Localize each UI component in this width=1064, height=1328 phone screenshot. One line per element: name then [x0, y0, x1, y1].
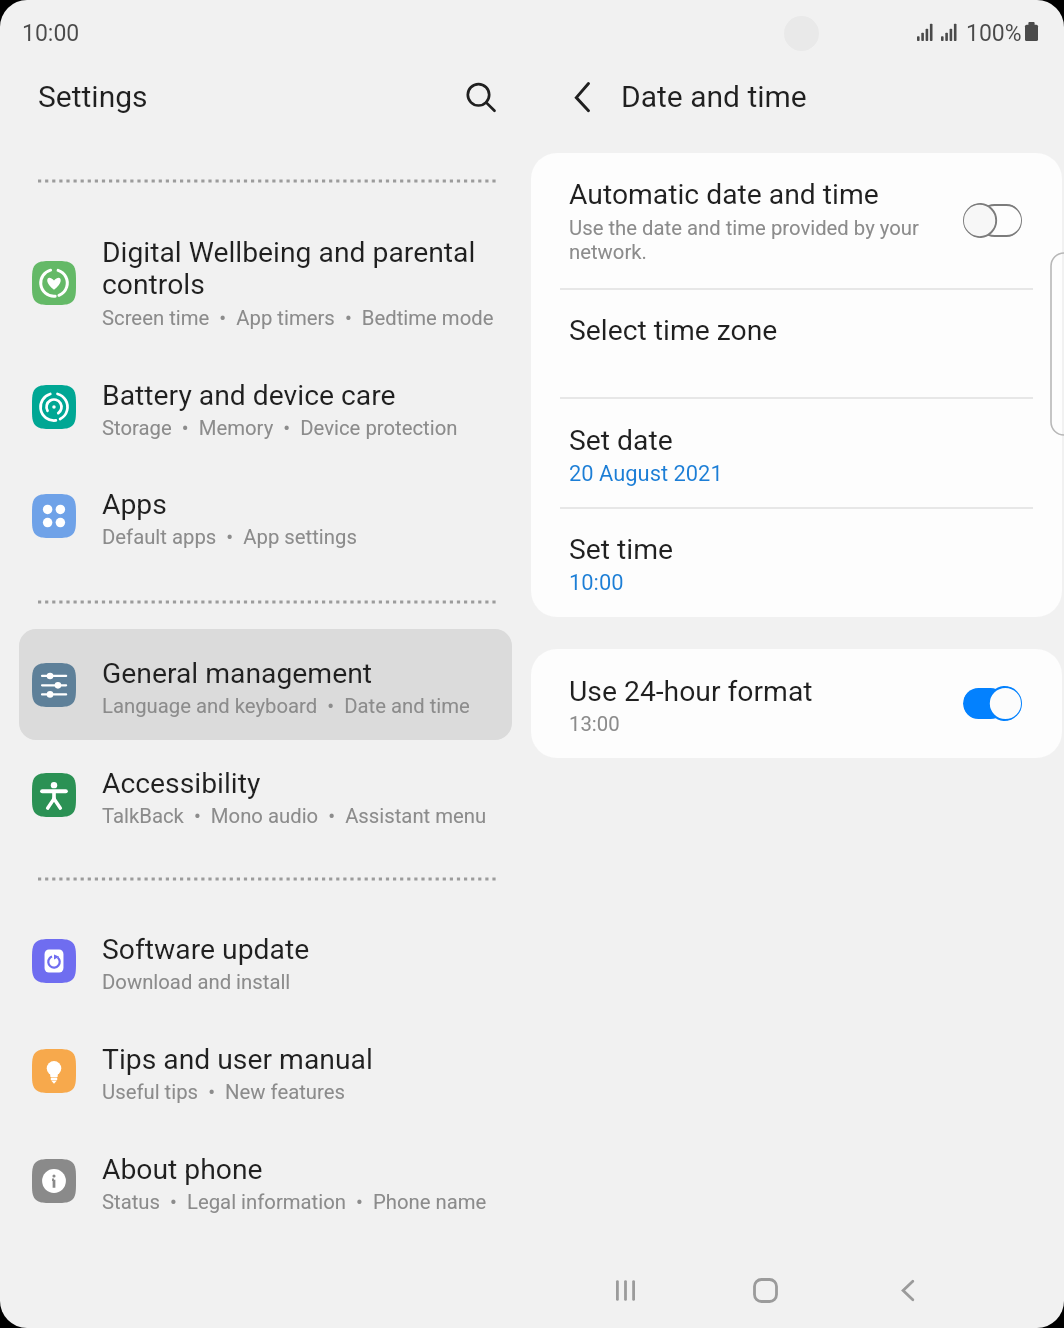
staticText: Storage • Memory • Device protection	[102, 416, 458, 440]
button[interactable]: About phone	[19, 1148, 512, 1240]
button[interactable]: Apps	[19, 483, 512, 575]
button[interactable]: General management	[19, 652, 512, 744]
staticText: Accessibility	[102, 767, 261, 800]
staticText: Tips and user manual	[102, 1043, 373, 1076]
staticText: 10:00	[22, 20, 80, 47]
staticText: Settings	[38, 79, 148, 114]
button[interactable]: Accessibility	[19, 762, 512, 854]
button[interactable]: Set time	[531, 507, 1062, 617]
button[interactable]: Battery and device care	[19, 374, 512, 466]
button[interactable]: Home	[734, 1259, 796, 1321]
button[interactable]: Recents	[594, 1259, 656, 1321]
staticText: Digital Wellbeing and parental	[102, 236, 476, 269]
button[interactable]: Select time zone	[531, 288, 1062, 398]
button[interactable]: Automatic date and time, off	[963, 203, 1022, 238]
button[interactable]: Search	[452, 68, 505, 121]
staticText: Apps	[102, 488, 167, 521]
staticText: Use 24-hour format	[569, 675, 813, 708]
staticText: Language and keyboard • Date and time	[102, 694, 470, 718]
staticText: About phone	[102, 1153, 263, 1186]
staticText: 100%	[966, 20, 1022, 47]
staticText: Default apps • App settings	[102, 525, 357, 549]
button[interactable]: Tips and user manual	[19, 1038, 512, 1130]
button[interactable]: Automatic date and time	[531, 153, 1062, 287]
button[interactable]: Use 24-hour format	[531, 649, 1062, 758]
staticText: Automatic date and time	[569, 178, 879, 211]
staticText: Screen time • App timers • Bedtime mode	[102, 306, 494, 330]
staticText: controls	[102, 268, 205, 301]
staticText: 13:00	[569, 712, 620, 736]
staticText: Software update	[102, 933, 310, 966]
button[interactable]: Back	[555, 70, 611, 126]
staticText: Useful tips • New features	[102, 1080, 345, 1104]
button[interactable]: Back	[877, 1259, 939, 1321]
staticText: Download and install	[102, 970, 291, 994]
staticText: Battery and device care	[102, 379, 396, 412]
staticText: Set time	[569, 533, 674, 566]
staticText: General management	[102, 657, 373, 690]
staticText: Use the date and time provided by your n…	[569, 216, 919, 264]
button[interactable]: Use 24-hour format, on	[963, 686, 1022, 721]
button[interactable]: Software update	[19, 928, 512, 1020]
staticText: TalkBack • Mono audio • Assistant menu	[102, 804, 487, 828]
staticText: 10:00	[569, 570, 624, 596]
staticText: 20 August 2021	[569, 461, 723, 487]
staticText: Set date	[569, 424, 673, 457]
staticText: Select time zone	[569, 314, 778, 347]
staticText: Date and time	[621, 79, 807, 114]
staticText: Status • Legal information • Phone name	[102, 1190, 487, 1214]
button[interactable]: Set date	[531, 397, 1062, 507]
button[interactable]: Digital Wellbeing and parental	[19, 250, 512, 362]
